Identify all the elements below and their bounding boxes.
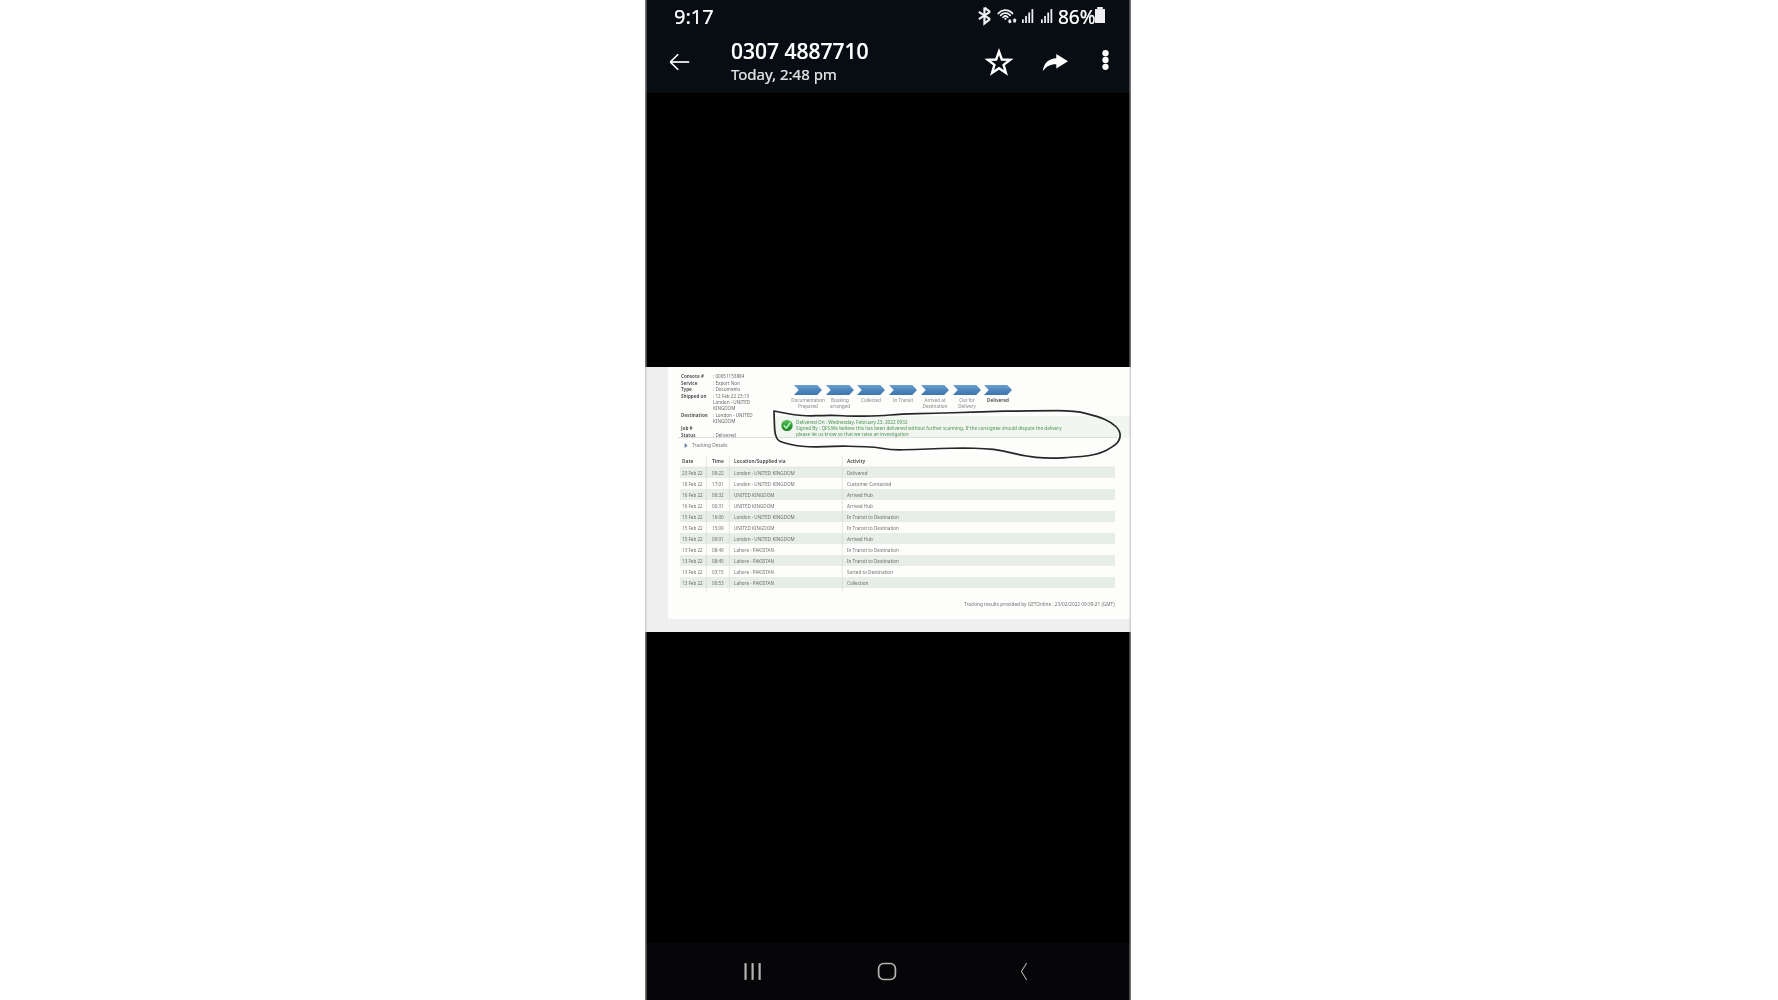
staticText: : Export Non bbox=[713, 380, 740, 386]
staticText: UNITED KINGDOM bbox=[734, 492, 844, 498]
staticText: 15 Feb 22 bbox=[682, 514, 708, 520]
staticText: 03:15 bbox=[712, 569, 731, 575]
staticText: 9:17 bbox=[674, 3, 714, 30]
staticText: 16 Feb 22 bbox=[682, 503, 708, 509]
staticText: Delivered bbox=[847, 470, 1004, 476]
button[interactable]: Favourite bbox=[974, 37, 1024, 87]
staticText: Shipped on bbox=[681, 393, 707, 399]
button[interactable]: Home bbox=[858, 943, 915, 1000]
staticText: 13 Feb 22 bbox=[682, 569, 708, 575]
staticText: In Transit to Destination bbox=[847, 525, 1004, 531]
staticText: Time bbox=[712, 458, 731, 465]
staticText: : London - UNITED bbox=[713, 412, 753, 418]
staticText: Status bbox=[681, 432, 696, 438]
staticText: 16 Feb 22 bbox=[682, 492, 708, 498]
staticText: Arrived at Destination bbox=[916, 397, 954, 409]
staticText: 15 Feb 22 bbox=[682, 525, 708, 531]
staticText: Tracking results provided by GETOnline :… bbox=[964, 601, 1115, 607]
staticText: In Transit to Destination bbox=[847, 514, 1004, 520]
staticText: Arrived Hub bbox=[847, 503, 1004, 509]
staticText: Booking arranged bbox=[821, 397, 859, 409]
staticText: Out for Delivery bbox=[948, 397, 986, 409]
staticText: Documentation Prepared bbox=[789, 397, 827, 409]
staticText: Sorted to Destination bbox=[847, 569, 1004, 575]
staticText: KINGDOM bbox=[713, 405, 736, 411]
staticText: 13 Feb 22 bbox=[682, 547, 708, 553]
staticText: 08:49 bbox=[712, 547, 731, 553]
staticText: : 00051153884 bbox=[713, 373, 745, 379]
button[interactable]: Back bbox=[995, 943, 1052, 1000]
staticText: : 12 Feb 22 23:13 bbox=[713, 393, 750, 399]
staticText: In Transit to Destination bbox=[847, 558, 1004, 564]
staticText: UNITED KINGDOM bbox=[734, 503, 844, 509]
staticText: 00:32 bbox=[712, 492, 731, 498]
button[interactable]: More options bbox=[1082, 37, 1128, 83]
staticText: 13 Feb 22 bbox=[682, 580, 708, 586]
staticText: 15:09 bbox=[712, 525, 731, 531]
staticText: Arrived Hub bbox=[847, 492, 1004, 498]
staticText: : Documents bbox=[713, 386, 741, 392]
staticText: Today, 2:48 pm bbox=[731, 64, 837, 84]
staticText: Destination bbox=[681, 412, 708, 418]
staticText: Job # bbox=[681, 425, 693, 431]
staticText: : Delivered bbox=[713, 432, 736, 438]
staticText: Arrived Hub bbox=[847, 536, 1004, 542]
staticText: 23 Feb 22 bbox=[682, 470, 708, 476]
staticText: 18 Feb 22 bbox=[682, 481, 708, 487]
staticText: Customer Contacted bbox=[847, 481, 1004, 487]
staticText: KINGDOM bbox=[713, 418, 736, 424]
staticText: Date bbox=[682, 458, 708, 465]
staticText: 15 Feb 22 bbox=[682, 536, 708, 542]
button[interactable]: Back bbox=[652, 35, 706, 89]
staticText: London - UNITED KINGDOM bbox=[734, 470, 844, 476]
staticText: Collection bbox=[847, 580, 1004, 586]
staticText: Lahore - PAKISTAN bbox=[734, 547, 844, 553]
staticText: 0307 4887710 bbox=[731, 37, 869, 66]
staticText: please let us know so that we raise an i… bbox=[796, 431, 909, 437]
staticText: 00:31 bbox=[712, 503, 731, 509]
staticText: Location/Supplied via bbox=[734, 458, 844, 465]
staticText: Lahore - PAKISTAN bbox=[734, 569, 844, 575]
button[interactable]: Share bbox=[1030, 37, 1080, 87]
staticText: 16:00 bbox=[712, 514, 731, 520]
staticText: Lahore - PAKISTAN bbox=[734, 580, 844, 586]
staticText: London - UNITED KINGDOM bbox=[734, 536, 844, 542]
staticText: Service bbox=[681, 380, 698, 386]
staticText: Delivered On : Wednesday, February 23, 2… bbox=[796, 419, 908, 425]
staticText: Activity bbox=[847, 458, 1004, 465]
staticText: Collected bbox=[852, 397, 890, 403]
staticText: 09:22 bbox=[712, 470, 731, 476]
staticText: 00:53 bbox=[712, 580, 731, 586]
staticText: Type bbox=[681, 386, 692, 392]
staticText: UNITED KINGDOM bbox=[734, 525, 844, 531]
staticText: In Transit to Destination bbox=[847, 547, 1004, 553]
staticText: Signed By : QFS.We believe this has been… bbox=[796, 425, 1062, 431]
staticText: 86% bbox=[1058, 4, 1096, 30]
staticText: Delivered bbox=[979, 397, 1017, 403]
staticText: Tracking Details bbox=[692, 442, 728, 449]
staticText: 08:45 bbox=[712, 558, 731, 564]
staticText: London - UNITED bbox=[713, 399, 751, 405]
staticText: 13 Feb 22 bbox=[682, 558, 708, 564]
staticText: 09:01 bbox=[712, 536, 731, 542]
staticText: London - UNITED KINGDOM bbox=[734, 514, 844, 520]
button[interactable]: Recents bbox=[723, 943, 780, 1000]
staticText: In Transit bbox=[884, 397, 922, 403]
staticText: 17:01 bbox=[712, 481, 731, 487]
staticText: Lahore - PAKISTAN bbox=[734, 558, 844, 564]
staticText: Consote # bbox=[681, 373, 704, 379]
staticText: London - UNITED KINGDOM bbox=[734, 481, 844, 487]
